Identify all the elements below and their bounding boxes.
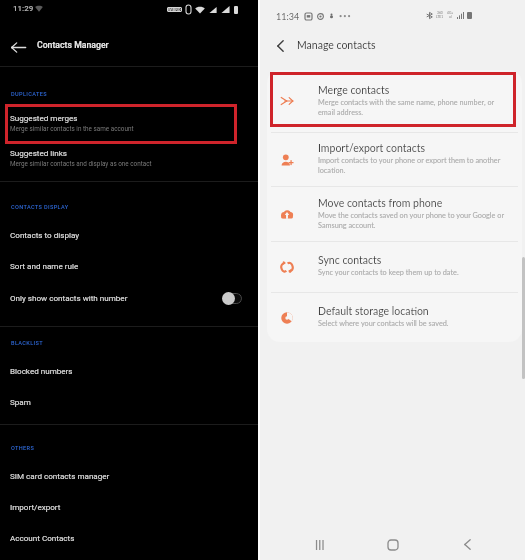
staticText: Merge similar contacts in the same accou…: [10, 125, 134, 132]
button[interactable]: Import/export: [0, 491, 258, 522]
button[interactable]: Home: [356, 528, 430, 560]
staticText: Import/export: [10, 502, 61, 511]
button[interactable]: Suggested merges: [0, 105, 258, 142]
staticText: OTHERS: [11, 445, 35, 452]
staticText: Account Contacts: [10, 533, 75, 542]
button[interactable]: Contacts to display: [0, 219, 258, 250]
button[interactable]: Sort and name rule: [0, 250, 258, 281]
staticText: Manage contacts: [297, 39, 376, 52]
button[interactable]: Suggested links: [0, 141, 258, 176]
staticText: 11:34: [276, 11, 300, 22]
staticText: Contacts Manager: [37, 40, 109, 50]
staticText: ul: [449, 15, 452, 19]
staticText: LTE1: [436, 15, 444, 19]
staticText: Default storage location: [318, 305, 429, 318]
button[interactable]: Only show contacts with number: [0, 283, 258, 314]
button[interactable]: Spam: [0, 386, 258, 417]
staticText: Move contacts from phone: [318, 197, 443, 210]
button[interactable]: Blocked numbers: [0, 355, 258, 386]
staticText: Contacts to display: [10, 230, 80, 239]
staticText: Import/export contacts: [318, 142, 425, 155]
staticText: Suggested merges: [10, 113, 78, 122]
staticText: Blocked numbers: [10, 366, 73, 375]
button[interactable]: Sync contacts: [267, 242, 522, 292]
staticText: 11:29: [13, 4, 34, 13]
staticText: CONTACTS DISPLAY: [11, 204, 69, 211]
staticText: Sync contacts: [318, 254, 382, 267]
button[interactable]: Account Contacts: [0, 522, 258, 553]
button[interactable]: Back: [5, 34, 31, 60]
staticText: Merge contacts: [318, 84, 390, 97]
button[interactable]: SIM card contacts manager: [0, 460, 258, 491]
staticText: DUPLICATES: [11, 91, 47, 98]
staticText: Suggested links: [10, 148, 68, 157]
staticText: 360: [437, 11, 443, 15]
staticText: Sort and name rule: [10, 261, 79, 270]
staticText: Sync your contacts to keep them up to da…: [318, 268, 459, 277]
staticText: •••: [339, 13, 352, 20]
button[interactable]: Back: [430, 528, 504, 560]
button[interactable]: Move contacts from phone: [267, 187, 522, 241]
staticText: BLACKLIST: [11, 340, 43, 347]
staticText: Only show contacts with number: [10, 293, 128, 302]
staticText: 4G+: [447, 11, 454, 15]
staticText: SIM card contacts manager: [10, 471, 110, 480]
staticText: Merge contacts with the same name, phone…: [318, 98, 495, 116]
button[interactable]: Import/export contacts: [267, 133, 522, 186]
button[interactable]: Navigate up: [269, 35, 291, 57]
staticText: Merge similar contacts and display as on…: [10, 160, 152, 167]
staticText: WIBRO: [168, 7, 181, 12]
button[interactable]: Recent apps: [283, 528, 356, 560]
staticText: Select where your contacts will be saved…: [318, 319, 449, 328]
staticText: Move the contacts saved on your phone to…: [318, 211, 505, 229]
button[interactable]: Default storage location: [267, 293, 522, 342]
button[interactable]: Merge contacts: [267, 70, 522, 132]
staticText: Spam: [10, 397, 31, 406]
staticText: Import contacts to your phone or export …: [318, 156, 501, 174]
